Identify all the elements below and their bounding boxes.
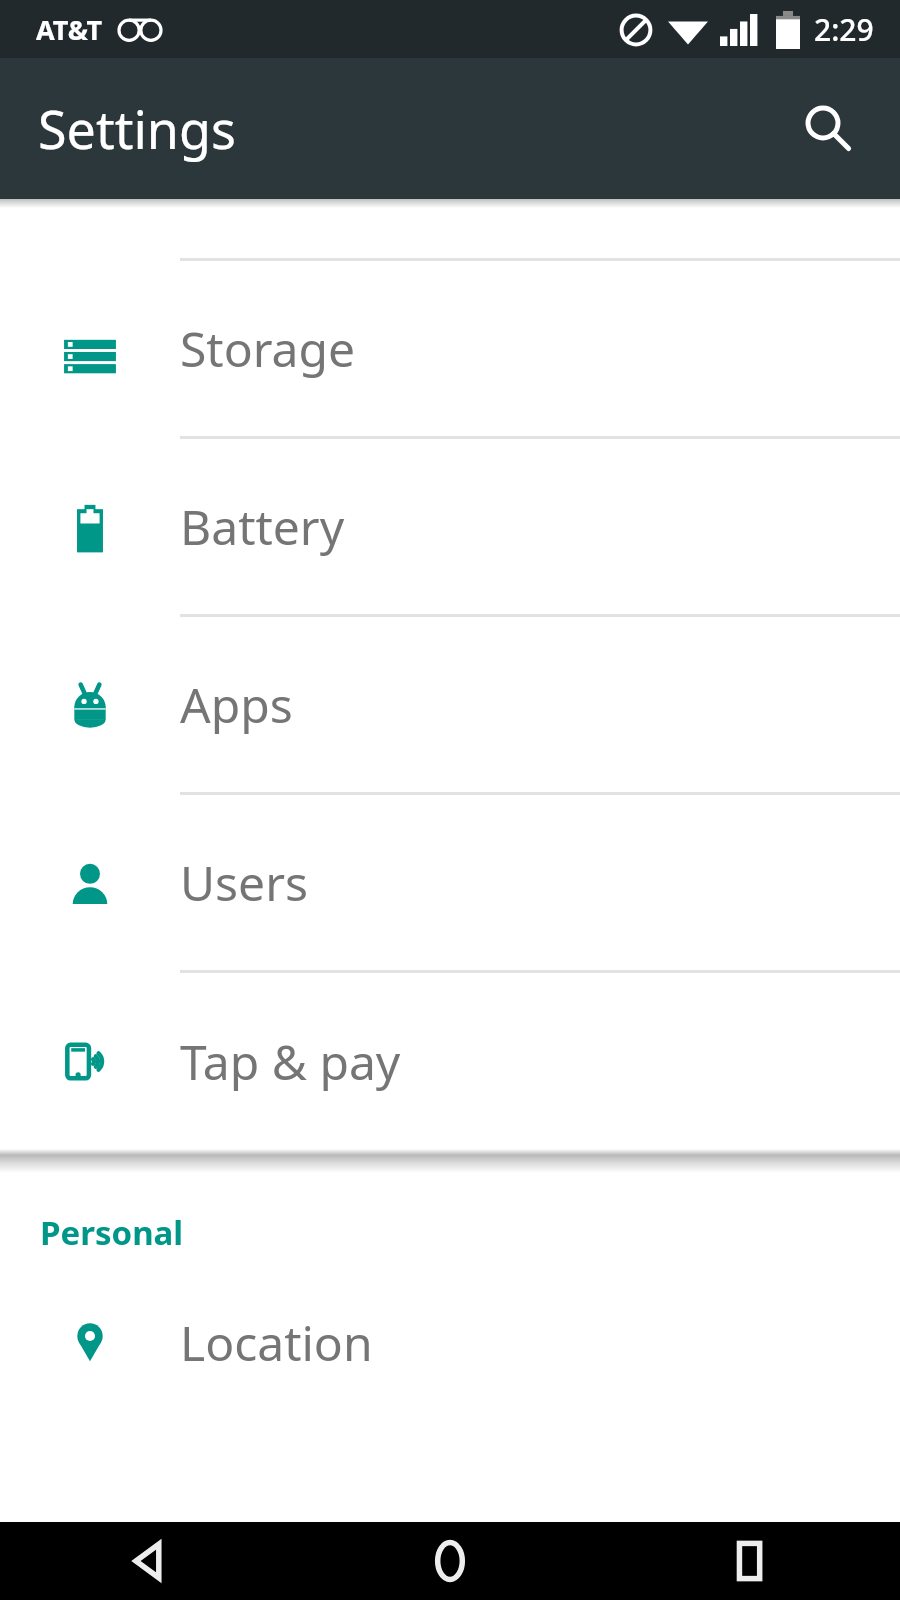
staticText: Battery [180, 494, 345, 559]
button[interactable]: Home [300, 1522, 600, 1600]
button[interactable]: Recent apps [600, 1522, 900, 1600]
button[interactable]: Search [782, 83, 874, 175]
staticText: AT&T [36, 11, 103, 48]
staticText: Settings [38, 93, 236, 164]
staticText: Users [180, 850, 308, 915]
button[interactable]: Users [0, 795, 900, 970]
button[interactable]: Tap & pay [0, 973, 900, 1149]
button[interactable]: Storage [0, 261, 900, 436]
staticText: Tap & pay [180, 1029, 401, 1094]
button[interactable]: Back [0, 1522, 300, 1600]
staticText: Personal [40, 1210, 184, 1255]
staticText: Storage [180, 316, 356, 381]
button[interactable]: Battery [0, 439, 900, 614]
button[interactable]: Apps [0, 617, 900, 792]
button[interactable]: Location [0, 1255, 900, 1430]
staticText: Apps [180, 672, 293, 737]
staticText: 2:29 [814, 9, 874, 50]
staticText: Location [180, 1310, 373, 1375]
